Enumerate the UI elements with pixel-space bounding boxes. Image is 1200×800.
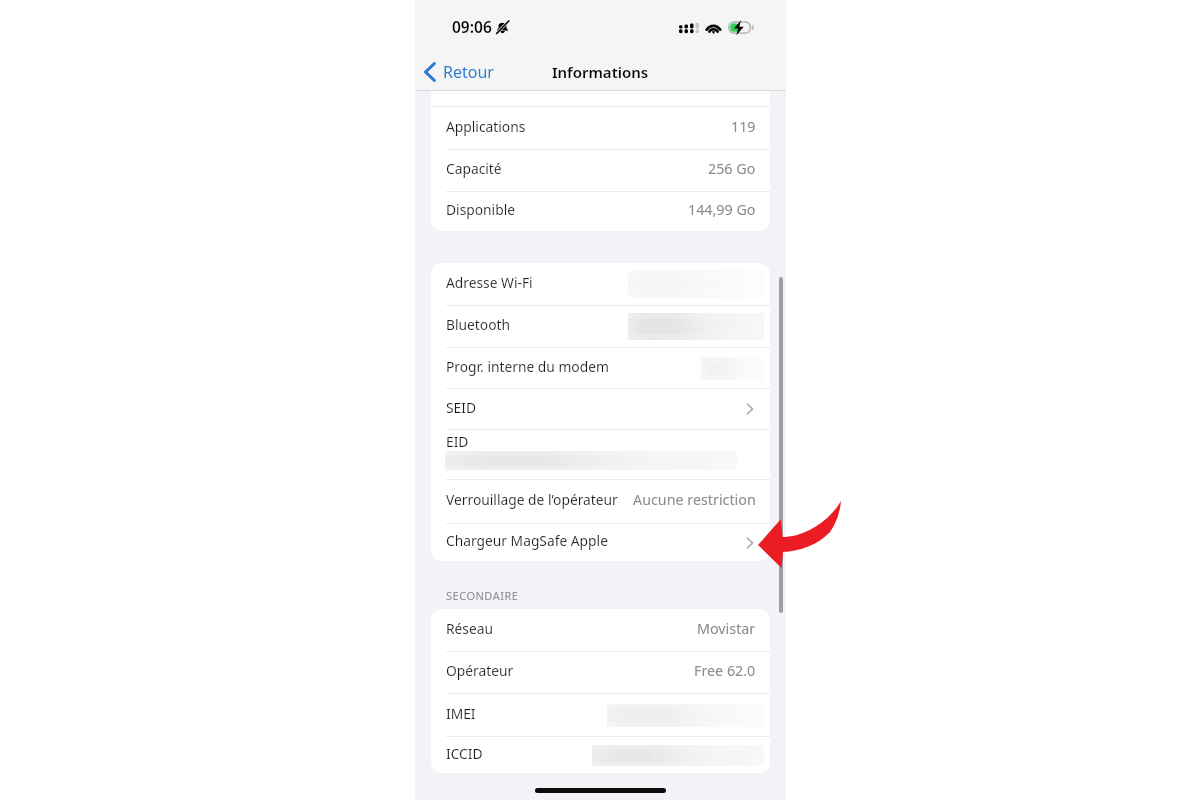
button[interactable]: Capacité [431,150,770,191]
staticText: Aucune restriction [633,490,756,509]
staticText: Progr. interne du modem [446,357,609,376]
button[interactable]: Réseau [431,609,770,651]
button[interactable]: Disponible [431,192,770,231]
button[interactable]: SEID [431,389,770,429]
staticText: Réseau [446,619,494,638]
button[interactable]: Adresse Wi-Fi [431,263,770,305]
staticText: Capacité [446,159,502,178]
staticText: 09:06 [452,16,492,37]
button[interactable]: Verrouillage de l’opérateur [431,480,770,523]
staticText: 256 Go [708,159,756,178]
staticText: Disponible [446,200,515,219]
button[interactable]: Retour [415,56,502,88]
button[interactable]: Bluetooth [431,306,770,347]
staticText: Retour [443,61,494,83]
staticText: Chargeur MagSafe Apple [446,531,608,550]
staticText: SECONDAIRE [446,588,519,603]
staticText: 119 [731,117,756,136]
staticText: ICCID [446,744,483,763]
staticText: Verrouillage de l’opérateur [446,490,618,509]
button[interactable]: Chargeur MagSafe Apple [431,524,770,561]
staticText: Opérateur [446,661,514,680]
button[interactable]: Progr. interne du modem [431,348,770,388]
staticText: 144,99 Go [688,200,756,219]
button[interactable]: IMEI [431,694,770,736]
staticText: SEID [446,398,476,417]
button[interactable]: ICCID [431,737,770,773]
staticText: Movistar [697,619,756,638]
staticText: Informations [552,62,649,82]
staticText: Applications [446,117,526,136]
button[interactable]: Applications [431,107,770,149]
staticText: IMEI [446,704,476,723]
staticText: EID [446,432,469,451]
staticText: Bluetooth [446,315,511,334]
button[interactable]: Opérateur [431,652,770,693]
staticText: Adresse Wi-Fi [446,273,533,292]
button[interactable]: EID [431,430,770,479]
staticText: Free 62.0 [694,661,756,680]
